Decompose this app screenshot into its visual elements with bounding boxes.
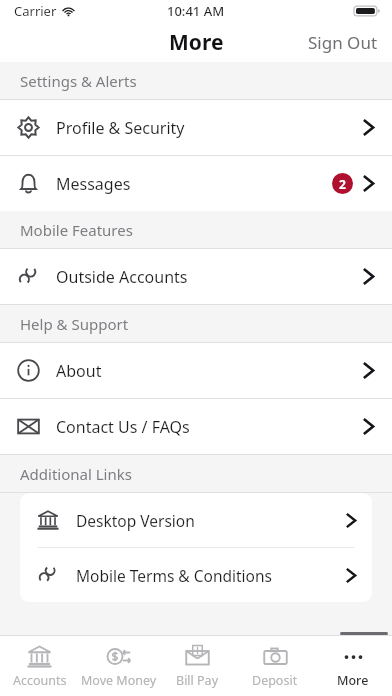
staticText: Sign Out: [308, 31, 378, 54]
button[interactable]: Accounts: [0, 636, 79, 696]
staticText: Profile & Security: [56, 117, 363, 139]
button[interactable]: About: [0, 343, 392, 398]
staticText: 2: [339, 176, 346, 192]
staticText: Help & Support: [20, 314, 129, 334]
button[interactable]: Outside Accounts: [0, 249, 392, 304]
staticText: Move Money: [81, 672, 157, 689]
staticText: About: [56, 360, 363, 382]
staticText: Settings & Alerts: [20, 71, 137, 91]
button[interactable]: Deposit: [236, 636, 314, 696]
staticText: Outside Accounts: [56, 266, 363, 288]
staticText: Mobile Terms & Conditions: [76, 565, 346, 586]
staticText: Mobile Features: [20, 220, 133, 240]
button[interactable]: Bill Pay: [158, 636, 236, 696]
button[interactable]: Messages: [0, 156, 392, 211]
staticText: Messages: [56, 173, 332, 195]
staticText: More: [337, 672, 369, 689]
staticText: More: [169, 28, 224, 57]
staticText: Contact Us / FAQs: [56, 416, 363, 438]
staticText: Desktop Version: [76, 510, 346, 531]
staticText: 10:41 AM: [167, 2, 225, 20]
button[interactable]: Move Money: [79, 636, 158, 696]
staticText: Bill Pay: [176, 672, 219, 689]
button[interactable]: Sign Out: [294, 23, 392, 62]
staticText: Additional Links: [20, 464, 132, 484]
button[interactable]: Desktop Version: [20, 493, 372, 547]
staticText: Accounts: [13, 672, 67, 689]
staticText: Deposit: [252, 672, 298, 689]
button[interactable]: Contact Us / FAQs: [0, 399, 392, 454]
staticText: Carrier: [14, 2, 57, 20]
button[interactable]: Profile & Security: [0, 100, 392, 155]
button[interactable]: Mobile Terms & Conditions: [20, 548, 372, 602]
button[interactable]: More: [314, 636, 392, 696]
